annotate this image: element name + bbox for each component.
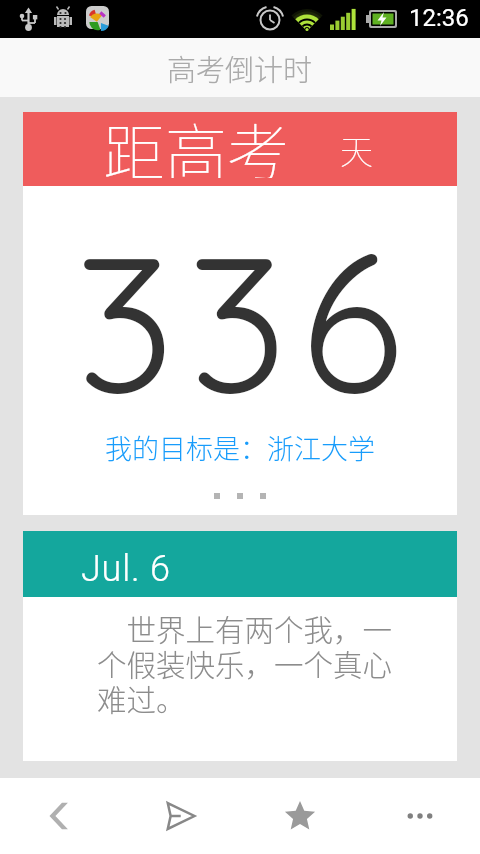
button[interactable]: Send xyxy=(120,778,240,854)
button[interactable]: 距高考 xyxy=(23,112,457,515)
button[interactable]: Jul. 6 xyxy=(23,531,457,761)
button[interactable]: More xyxy=(360,778,480,854)
staticText: 距高考 xyxy=(103,104,290,178)
staticText: Jul. 6 xyxy=(81,548,171,590)
staticText: 天 xyxy=(340,126,373,174)
staticText: 高考倒计时 xyxy=(167,47,313,89)
staticText: 12:36 xyxy=(409,4,469,32)
button[interactable]: 我的目标是：浙江大学 xyxy=(23,428,457,467)
staticText: 我的目标是：浙江大学 xyxy=(105,428,375,467)
button[interactable]: Favorite xyxy=(240,778,360,854)
staticText: 世界上有两个我，一个假装快乐，一个真心难过。 xyxy=(97,607,409,719)
staticText: 336 xyxy=(75,202,416,440)
button[interactable]: Back xyxy=(0,778,120,854)
